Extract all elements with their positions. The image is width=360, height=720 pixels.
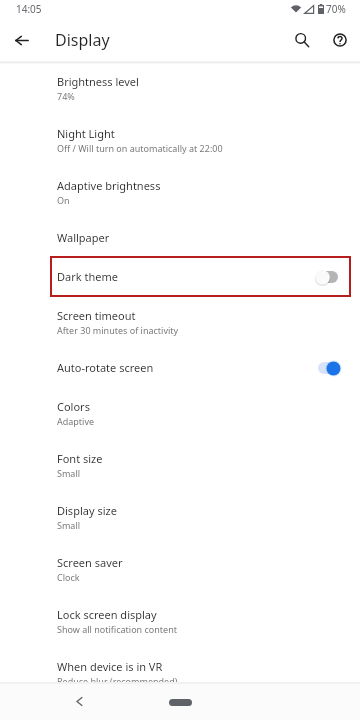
staticText: Display size bbox=[57, 503, 117, 518]
button[interactable]: Off bbox=[314, 268, 342, 286]
staticText: Reduce blur (recommended) bbox=[57, 675, 178, 683]
button[interactable]: When device is in VR bbox=[0, 647, 360, 683]
staticText: Adaptive brightness bbox=[57, 178, 161, 193]
button[interactable]: Dark theme bbox=[0, 257, 360, 296]
button[interactable]: Auto-rotate screen bbox=[0, 348, 360, 387]
button[interactable]: Wallpaper bbox=[0, 218, 360, 257]
button[interactable]: Colors bbox=[0, 387, 360, 439]
staticText: Show all notification content bbox=[57, 623, 177, 635]
button[interactable]: Help bbox=[321, 21, 359, 59]
staticText: Screen saver bbox=[57, 555, 123, 570]
button[interactable]: Display size bbox=[0, 491, 360, 543]
staticText: On bbox=[57, 194, 70, 206]
staticText: Off / Will turn on automatically at 22:0… bbox=[57, 142, 223, 154]
staticText: Brightness level bbox=[57, 74, 139, 89]
staticText: 14:05 bbox=[16, 2, 42, 16]
staticText: Font size bbox=[57, 451, 103, 466]
staticText: Screen timeout bbox=[57, 308, 136, 323]
staticText: Colors bbox=[57, 399, 90, 414]
staticText: Display bbox=[55, 29, 110, 51]
button[interactable]: Screen saver bbox=[0, 543, 360, 595]
button[interactable]: Back bbox=[0, 21, 43, 59]
staticText: 70% bbox=[326, 2, 346, 16]
staticText: Clock bbox=[57, 571, 80, 583]
staticText: Night Light bbox=[57, 126, 115, 141]
staticText: Small bbox=[57, 467, 81, 479]
button[interactable]: Font size bbox=[0, 439, 360, 491]
button[interactable]: Home bbox=[169, 699, 192, 706]
button[interactable]: Screen timeout bbox=[0, 296, 360, 348]
staticText: Adaptive bbox=[57, 415, 95, 427]
staticText: After 30 minutes of inactivity bbox=[57, 324, 179, 336]
button[interactable]: On bbox=[314, 359, 342, 377]
staticText: Lock screen display bbox=[57, 607, 157, 622]
button[interactable]: Lock screen display bbox=[0, 595, 360, 647]
button[interactable]: Adaptive brightness bbox=[0, 166, 360, 218]
staticText: Small bbox=[57, 519, 81, 531]
staticText: When device is in VR bbox=[57, 659, 163, 674]
staticText: Wallpaper bbox=[57, 230, 110, 245]
staticText: Auto-rotate screen bbox=[57, 360, 154, 375]
button[interactable]: Search bbox=[283, 21, 321, 59]
button[interactable]: Brightness level bbox=[0, 62, 360, 114]
staticText: Dark theme bbox=[57, 269, 118, 284]
button[interactable]: Night Light bbox=[0, 114, 360, 166]
button[interactable]: Back bbox=[68, 690, 90, 712]
staticText: 74% bbox=[57, 90, 75, 102]
